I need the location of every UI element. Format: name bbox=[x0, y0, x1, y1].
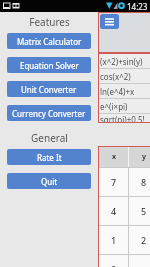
staticText: y bbox=[142, 152, 146, 162]
button[interactable]: Rate It bbox=[7, 149, 91, 165]
button[interactable]: Equation Solver bbox=[7, 57, 91, 73]
button[interactable]: 5 bbox=[129, 197, 150, 225]
button[interactable]: sqrt(pi)+0.5! bbox=[99, 114, 150, 122]
button[interactable]: cos(x^2) bbox=[99, 69, 150, 83]
staticText: 0 bbox=[111, 263, 117, 267]
button[interactable]: 7 bbox=[99, 168, 129, 196]
staticText: Features bbox=[29, 15, 70, 29]
button[interactable]: 8 bbox=[129, 168, 150, 196]
button[interactable]: Unit Converter bbox=[7, 81, 91, 97]
button[interactable]: ln(e^4)+x bbox=[99, 84, 150, 98]
staticText: ln(e^4)+x bbox=[100, 86, 135, 97]
button[interactable]: Currency Converter bbox=[7, 105, 91, 121]
button[interactable]: 2 bbox=[129, 226, 150, 254]
staticText: 2 bbox=[141, 234, 147, 246]
staticText: General bbox=[31, 131, 68, 145]
staticText: Matrix Calculator bbox=[17, 36, 82, 47]
staticText: Equation Solver bbox=[20, 60, 79, 71]
button[interactable]: Matrix Calculator bbox=[7, 33, 91, 49]
button[interactable]: (x^2)+sin(y) bbox=[99, 54, 150, 68]
button[interactable]: y bbox=[129, 147, 150, 167]
button[interactable]: 0 bbox=[99, 255, 129, 267]
button[interactable]: Quit bbox=[7, 173, 91, 189]
staticText: sqrt(pi)+0.5! bbox=[100, 114, 145, 122]
button[interactable]: Menu bbox=[100, 14, 119, 29]
staticText: cos(x^2) bbox=[100, 71, 131, 82]
staticText: Currency Converter bbox=[12, 108, 86, 119]
button[interactable]: e^(i×pi) bbox=[99, 99, 150, 113]
button[interactable]: x bbox=[99, 147, 129, 167]
staticText: Quit bbox=[41, 176, 58, 187]
staticText: 8 bbox=[141, 176, 147, 188]
staticText: Unit Converter bbox=[21, 84, 77, 95]
staticText: e^(i×pi) bbox=[100, 101, 128, 112]
button[interactable]: 1 bbox=[99, 226, 129, 254]
staticText: 1 bbox=[111, 234, 117, 246]
staticText: 7 bbox=[111, 176, 117, 188]
staticText: 14:23 bbox=[127, 1, 148, 12]
staticText: 5 bbox=[141, 205, 147, 217]
button[interactable]: 4 bbox=[99, 197, 129, 225]
staticText: (x^2)+sin(y) bbox=[100, 56, 143, 67]
staticText: 4 bbox=[111, 205, 117, 217]
staticText: x bbox=[112, 152, 117, 162]
staticText: Rate It bbox=[37, 152, 62, 163]
